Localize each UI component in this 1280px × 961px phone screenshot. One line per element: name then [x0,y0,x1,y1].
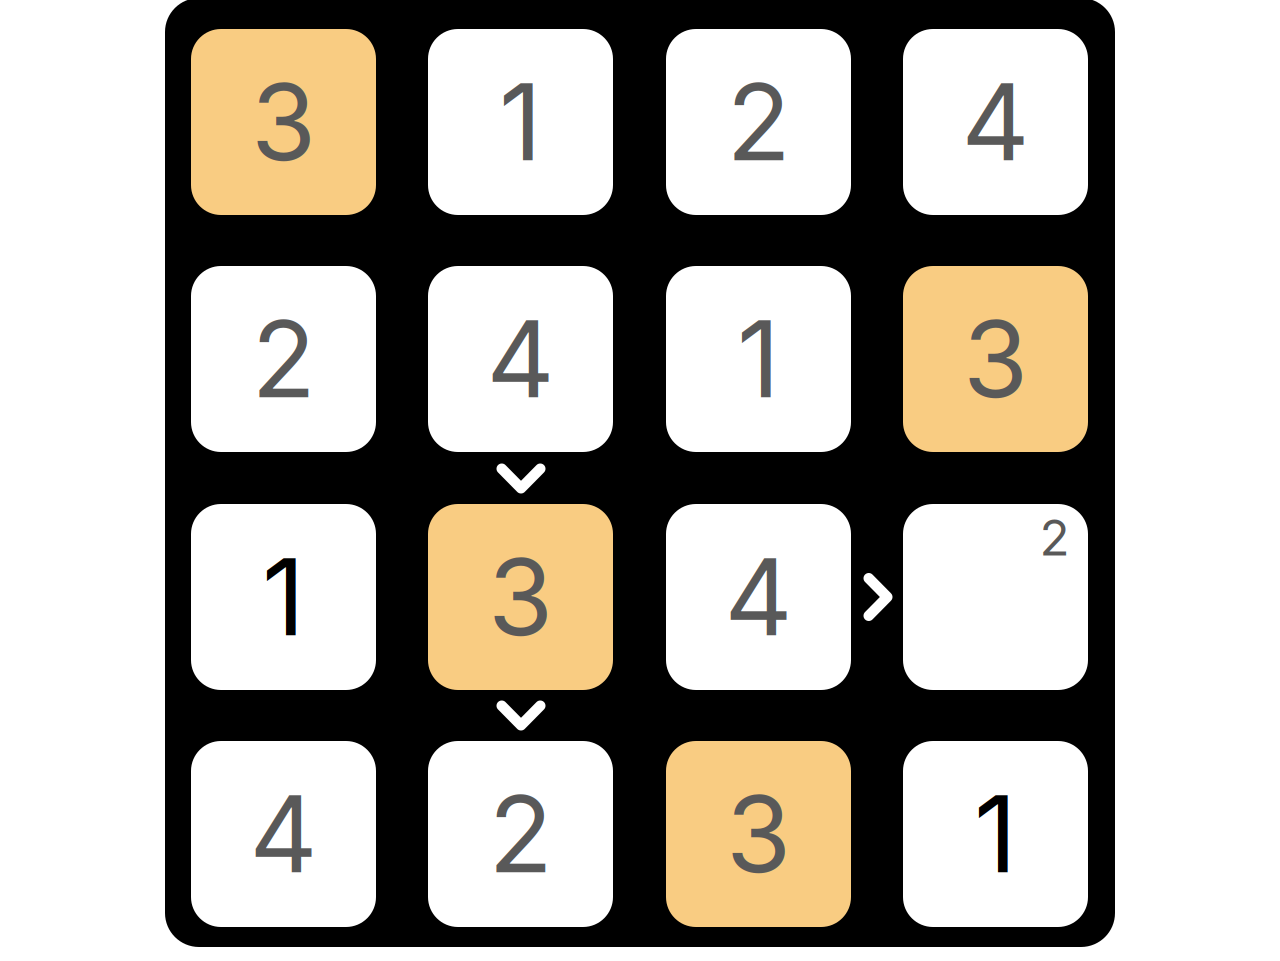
button[interactable]: Row 3, column 2, 3 [428,504,613,690]
staticText: 2 [1039,508,1069,567]
staticText: 3 [251,58,316,186]
button[interactable]: Row 3, column 3, 4 [666,504,851,690]
staticText: 4 [724,533,792,661]
button[interactable]: Row 2, column 3, 1 [666,266,851,452]
button[interactable]: Row 2, column 4, 3 [903,266,1088,452]
staticText: 1 [262,533,305,661]
button[interactable]: Row 2, column 1, 2 [191,266,376,452]
staticText: 4 [486,295,554,423]
staticText: 3 [726,770,791,898]
staticText: 2 [726,58,790,186]
staticText: 4 [961,58,1029,186]
staticText: 3 [963,295,1028,423]
button[interactable]: Row 4, column 1, 4 [191,741,376,927]
button[interactable]: Row 4, column 3, 3 [666,741,851,927]
button[interactable]: Row 1, column 2, 1 [428,29,613,215]
button[interactable]: Row 4, column 4, 1, given [903,741,1088,927]
button[interactable]: Row 1, column 4, 4 [903,29,1088,215]
button[interactable]: Row 1, column 1, 3 [191,29,376,215]
button[interactable]: Row 4, column 2, 2 [428,741,613,927]
staticText: 2 [488,770,552,898]
button[interactable]: Row 3, column 4, empty, pencil mark 2 [903,504,1088,690]
staticText: 1 [499,58,542,186]
staticText: 2 [251,295,315,423]
staticText: 4 [249,770,317,898]
button[interactable]: Row 1, column 3, 2 [666,29,851,215]
button[interactable]: Row 3, column 1, 1, given [191,504,376,690]
button[interactable]: Row 2, column 2, 4 [428,266,613,452]
staticText: 1 [737,295,780,423]
staticText: 1 [974,770,1017,898]
staticText: 3 [488,533,553,661]
